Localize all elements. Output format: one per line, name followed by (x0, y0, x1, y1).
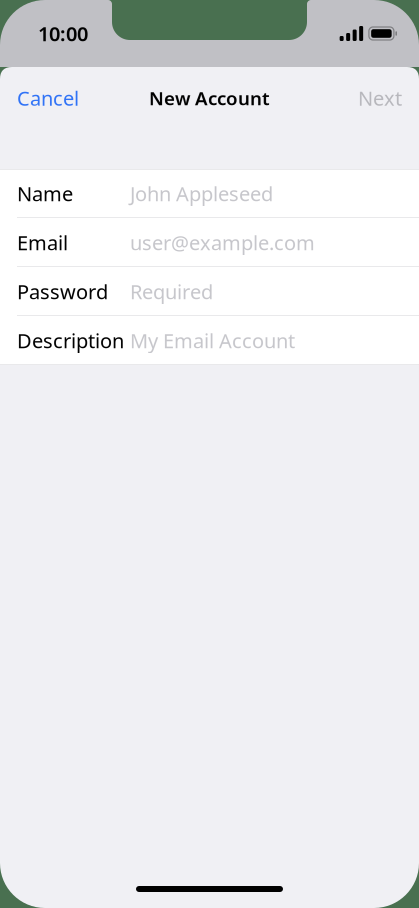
staticText: John Appleseed (130, 180, 273, 207)
staticText: Description (17, 327, 124, 354)
button[interactable]: Cancel (17, 85, 79, 111)
staticText: Next (358, 85, 402, 111)
staticText: 10:00 (38, 20, 88, 47)
staticText: Name (17, 180, 73, 207)
staticText: Required (130, 278, 213, 305)
button[interactable]: Email (0, 218, 419, 267)
staticText: My Email Account (130, 327, 295, 354)
button[interactable]: Next (358, 85, 402, 111)
staticText: Cancel (17, 85, 79, 111)
staticText: Email (17, 229, 68, 256)
staticText: user@example.com (130, 229, 315, 256)
staticText: New Account (149, 86, 270, 110)
button[interactable]: Password (0, 267, 419, 316)
button[interactable]: Description (0, 316, 419, 365)
button[interactable]: Name (0, 169, 419, 218)
staticText: Password (17, 278, 108, 305)
